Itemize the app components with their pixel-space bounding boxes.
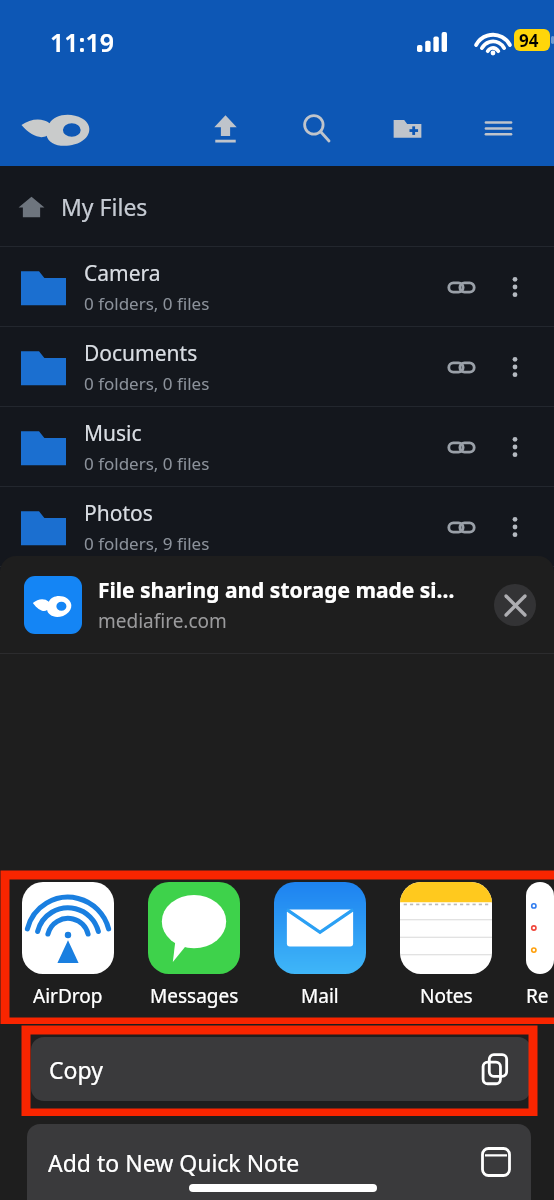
button[interactable]: Add to New Quick Note <box>27 1124 531 1200</box>
button[interactable]: Photos <box>0 487 554 567</box>
button[interactable]: Mail <box>274 882 366 1009</box>
button[interactable]: My Files <box>0 166 554 247</box>
button[interactable]: Copy link <box>434 500 488 554</box>
button[interactable]: Copy link <box>434 420 488 474</box>
staticText: File sharing and storage made si… <box>98 576 455 605</box>
button[interactable]: Menu <box>472 102 524 154</box>
button[interactable]: Messages <box>148 882 240 1009</box>
staticText: My Files <box>61 191 148 222</box>
staticText: Reminders <box>526 983 554 1009</box>
staticText: 0 folders, 0 files <box>84 452 210 475</box>
staticText: 0 folders, 0 files <box>84 372 210 395</box>
staticText: Camera <box>84 259 161 288</box>
button[interactable]: Documents <box>0 327 554 407</box>
staticText: Music <box>84 419 142 448</box>
staticText: 11:19 <box>50 25 115 59</box>
button[interactable]: Copy link <box>434 340 488 394</box>
button[interactable]: New folder <box>381 102 433 154</box>
staticText: mediafire.com <box>98 608 227 634</box>
staticText: AirDrop <box>33 983 103 1009</box>
staticText: Documents <box>84 339 198 368</box>
button[interactable]: Music <box>0 407 554 487</box>
button[interactable]: More options <box>488 420 542 474</box>
staticText: Add to New Quick Note <box>48 1147 300 1178</box>
staticText: Photos <box>84 499 153 528</box>
staticText: Messages <box>150 983 239 1009</box>
button[interactable]: AirDrop <box>22 882 114 1009</box>
button[interactable]: Copy link <box>434 260 488 314</box>
button[interactable]: Reminders <box>526 882 554 1009</box>
staticText: 94 <box>519 29 539 52</box>
button[interactable]: Upload <box>199 102 251 154</box>
button[interactable]: Search <box>290 102 342 154</box>
button[interactable]: File sharing and storage made si… <box>0 556 554 653</box>
button[interactable]: More options <box>488 340 542 394</box>
staticText: Copy <box>49 1054 103 1085</box>
button[interactable]: Copy <box>31 1037 531 1101</box>
staticText: 0 folders, 9 files <box>84 532 210 555</box>
staticText: 0 folders, 0 files <box>84 292 210 315</box>
button[interactable]: Camera <box>0 247 554 327</box>
staticText: Mail <box>301 983 339 1009</box>
staticText: Notes <box>420 983 473 1009</box>
button[interactable]: More options <box>488 260 542 314</box>
button[interactable]: MediaFire <box>20 104 94 152</box>
button[interactable]: Close <box>494 584 536 626</box>
button[interactable]: Notes <box>400 882 492 1009</box>
button[interactable]: More options <box>488 500 542 554</box>
